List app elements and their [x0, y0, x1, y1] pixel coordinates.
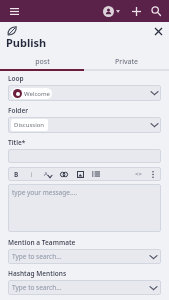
button[interactable]: Bold	[11, 169, 21, 179]
button[interactable]	[8, 149, 161, 163]
button[interactable]: Menu	[6, 3, 22, 19]
button[interactable]: Image	[75, 169, 85, 179]
staticText: type your message....	[12, 188, 77, 197]
button[interactable]: Type to search...	[8, 280, 161, 295]
staticText: A	[44, 170, 48, 178]
button[interactable]: Search	[148, 3, 164, 19]
button[interactable]: Type to search...	[8, 249, 161, 264]
button[interactable]: Add	[128, 3, 144, 19]
button[interactable]: type your message....	[8, 184, 161, 232]
button[interactable]: Bulleted list	[91, 169, 101, 179]
staticText: Publish	[6, 35, 47, 50]
staticText: post	[35, 57, 50, 67]
button[interactable]: Link	[59, 169, 69, 179]
staticText: B	[14, 170, 19, 179]
staticText: Title*	[8, 138, 26, 147]
staticText: Private	[115, 57, 138, 67]
button[interactable]: Close	[151, 24, 165, 38]
button[interactable]: Text style	[43, 169, 53, 179]
button[interactable]: Welcome	[8, 85, 161, 101]
staticText: Mention a Teammate	[8, 238, 76, 247]
staticText: Type to search...	[12, 283, 62, 292]
staticText: Discussion	[14, 121, 45, 129]
staticText: Folder	[8, 106, 29, 115]
button[interactable]: Discussion	[8, 117, 161, 133]
staticText: <>	[135, 170, 142, 178]
button[interactable]: Italic	[27, 169, 37, 179]
button[interactable]: Code	[133, 169, 143, 179]
button[interactable]: post	[0, 55, 84, 69]
staticText: i	[31, 170, 33, 179]
staticText: Welcome	[24, 90, 50, 98]
button[interactable]: Account	[102, 6, 121, 17]
staticText: Loop	[8, 74, 24, 83]
staticText: Hashtag Mentions	[8, 269, 67, 278]
staticText: Type to search...	[12, 252, 62, 261]
button[interactable]: Private	[84, 55, 169, 69]
button[interactable]: More options	[148, 169, 158, 179]
